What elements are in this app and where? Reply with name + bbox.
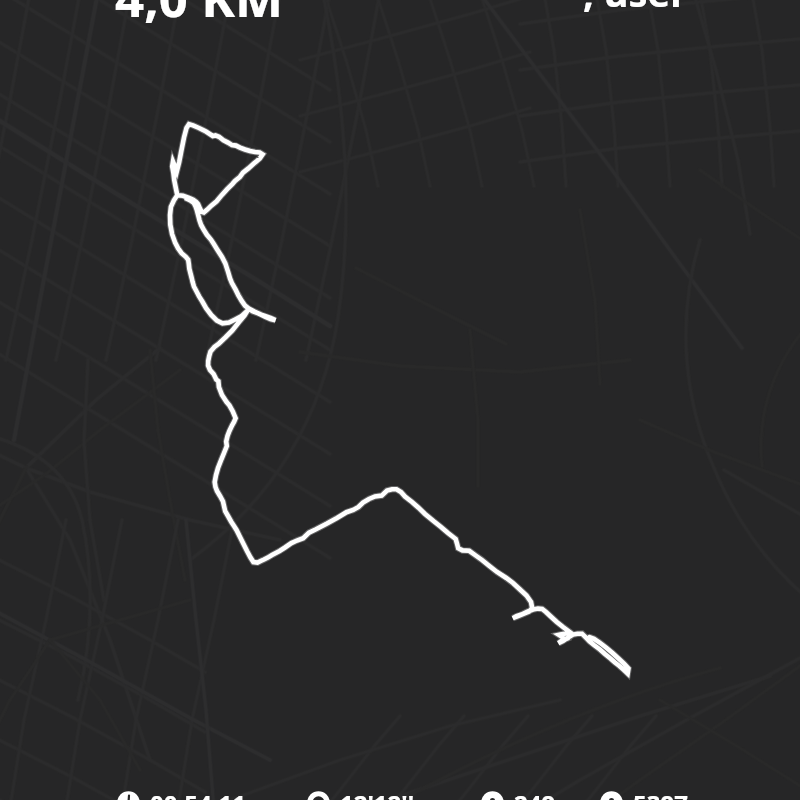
- button[interactable]: 00:54:11: [117, 786, 246, 800]
- staticText: , user: [583, 0, 688, 18]
- staticText: 4,0 KM: [115, 0, 284, 31]
- staticText: 00:54:11: [150, 787, 246, 800]
- button[interactable]: 249: [481, 786, 556, 800]
- staticText: 12'12'': [340, 787, 415, 800]
- button[interactable]: 5397: [600, 786, 688, 800]
- button[interactable]: 12'12'': [307, 786, 415, 800]
- staticText: 249: [514, 787, 556, 800]
- staticText: 5397: [633, 787, 688, 800]
